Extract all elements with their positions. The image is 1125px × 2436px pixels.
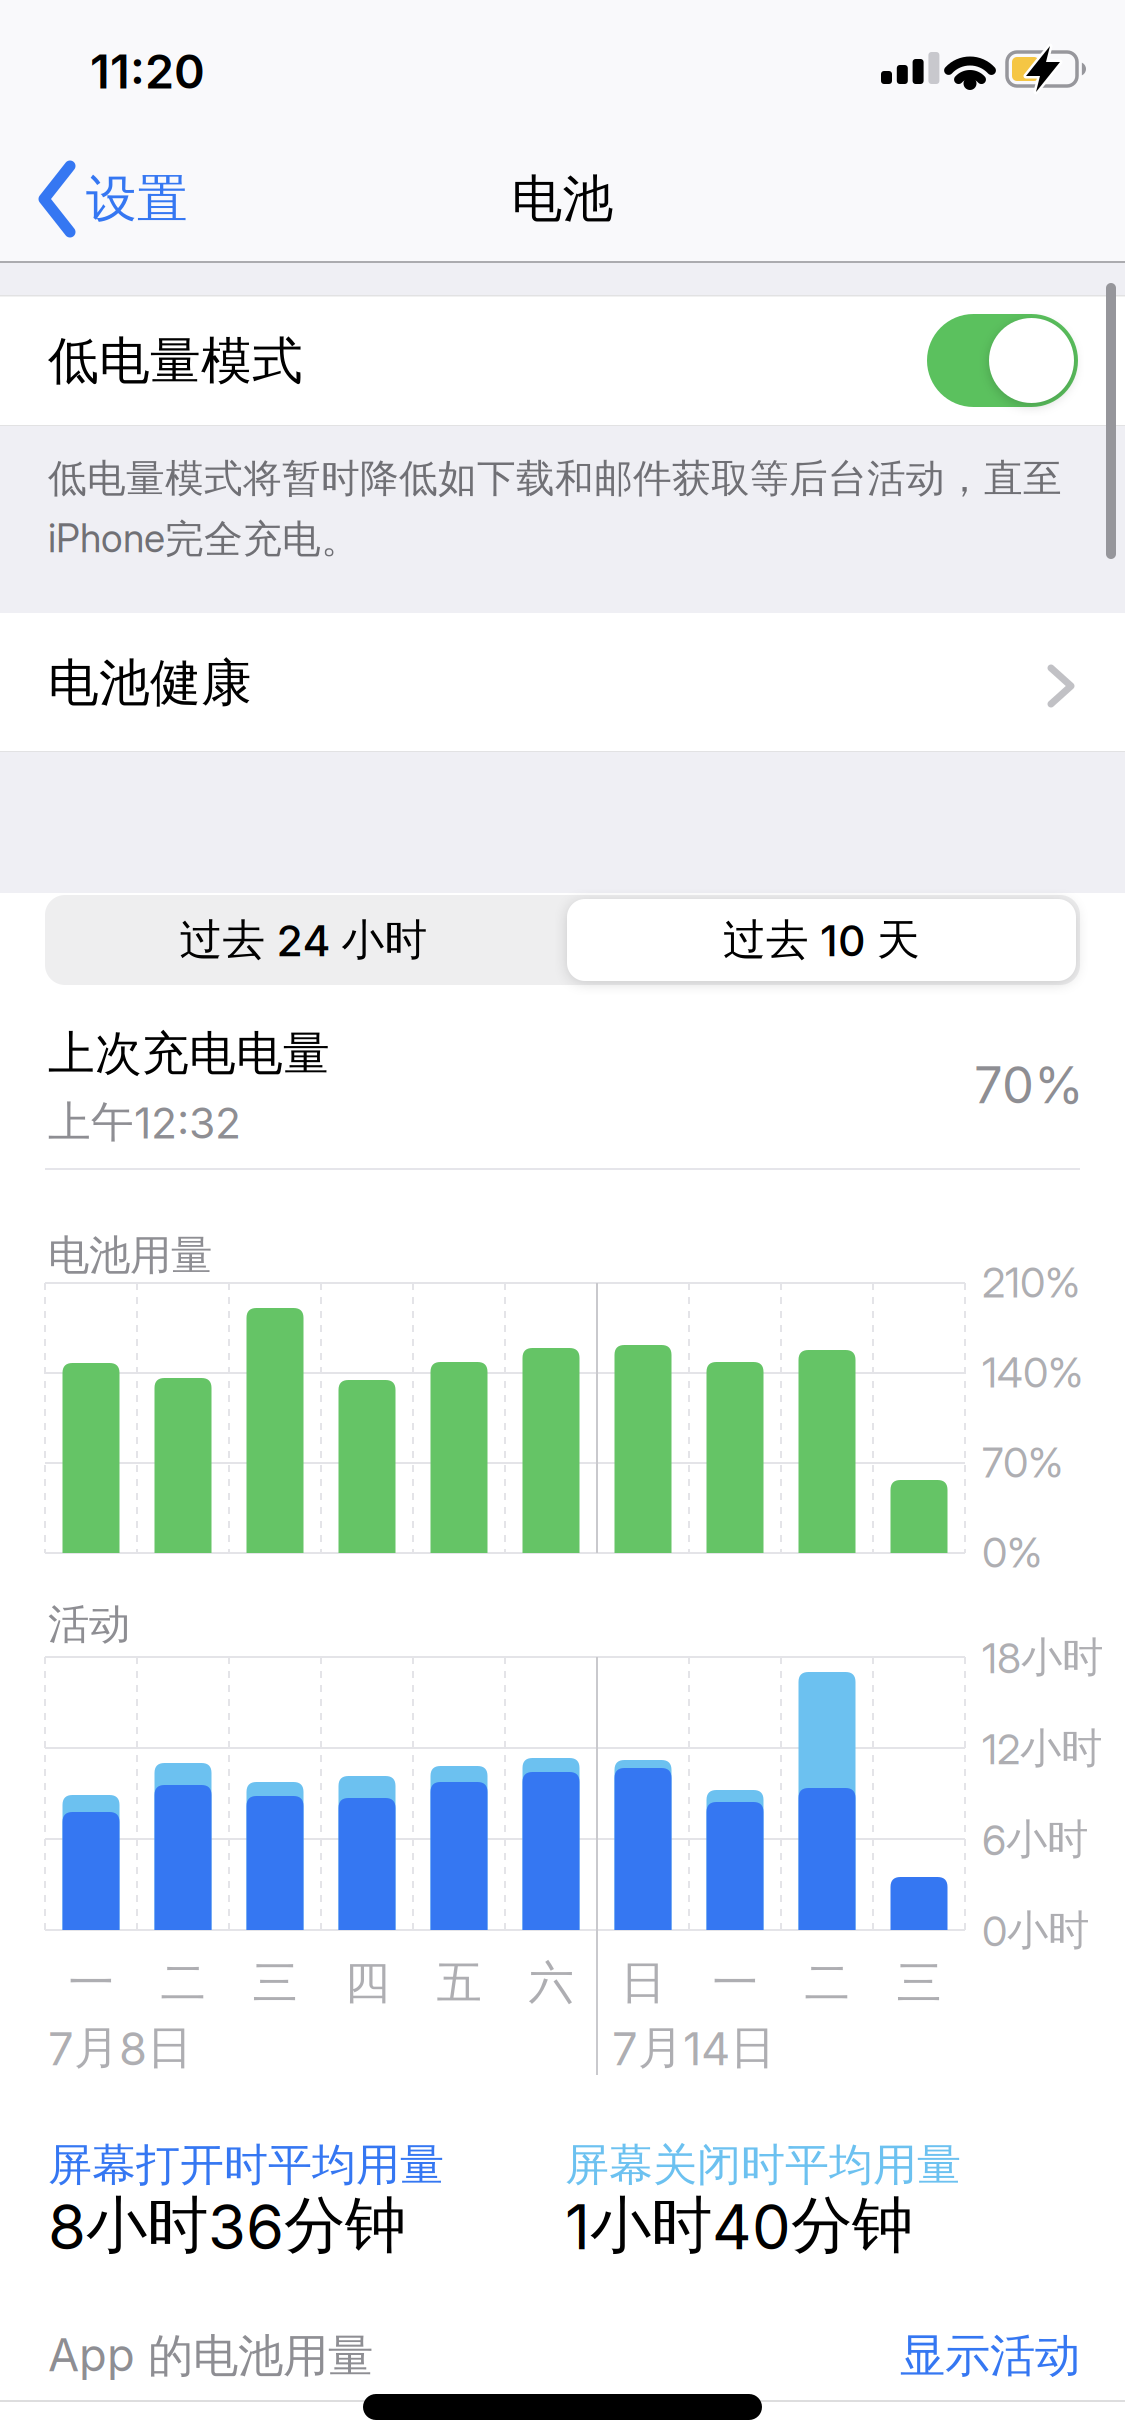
staticText: 210% [982, 1258, 1080, 1307]
staticText: 7月8日 [48, 2020, 192, 2076]
staticText: 70% [982, 1438, 1063, 1487]
staticText: 8小时36分钟 [48, 2188, 406, 2263]
staticText: 过去 10 天 [723, 914, 920, 966]
staticText: 六 [528, 1955, 573, 2011]
staticText: 电池 [511, 168, 613, 230]
staticText: 二 [804, 1955, 849, 2011]
staticText: 屏幕打开时平均用量 [48, 2138, 444, 2192]
staticText: 1小时40分钟 [565, 2188, 913, 2263]
button[interactable]: 设置 [20, 150, 250, 250]
staticText: 五 [436, 1955, 481, 2011]
staticText: 一 [68, 1955, 113, 2011]
staticText: 低电量模式 [48, 330, 303, 392]
button[interactable]: 低电量模式 [927, 314, 1078, 407]
button[interactable]: 过去 10 天 [567, 899, 1076, 981]
staticText: 屏幕关闭时平均用量 [565, 2138, 961, 2192]
button[interactable]: 电池健康 [0, 613, 1125, 751]
staticText: 显示活动 [900, 2328, 1080, 2384]
staticText: 设置 [86, 168, 188, 230]
staticText: 活动 [48, 1599, 130, 1650]
staticText: 12小时 [982, 1723, 1102, 1774]
staticText: 二 [160, 1955, 205, 2011]
staticText: 上午12:32 [48, 1096, 241, 1148]
staticText: 70% [974, 1055, 1084, 1115]
button[interactable]: 显示活动 [900, 2328, 1080, 2384]
staticText: 0小时 [982, 1905, 1089, 1956]
staticText: 三 [252, 1955, 297, 2011]
staticText: 上次充电电量 [48, 1025, 330, 1082]
staticText: 0% [982, 1528, 1042, 1577]
staticText: 11:20 [90, 44, 205, 99]
staticText: 过去 24 小时 [179, 914, 427, 966]
staticText: 四 [344, 1955, 389, 2011]
button[interactable]: 过去 24 小时 [45, 895, 562, 985]
staticText: 6小时 [982, 1814, 1088, 1865]
staticText: 电池健康 [48, 652, 252, 714]
staticText: 18小时 [982, 1632, 1103, 1683]
staticText: 日 [620, 1955, 665, 2011]
staticText: 低电量模式将暂时降低如下载和邮件获取等后台活动，直至 [48, 455, 1062, 502]
staticText: App 的电池用量 [48, 2328, 373, 2384]
staticText: 三 [896, 1955, 941, 2011]
staticText: 电池用量 [48, 1230, 212, 1281]
staticText: iPhone完全充电。 [48, 515, 360, 563]
staticText: 7月14日 [612, 2020, 775, 2076]
staticText: 一 [712, 1955, 757, 2011]
staticText: 140% [982, 1348, 1083, 1397]
